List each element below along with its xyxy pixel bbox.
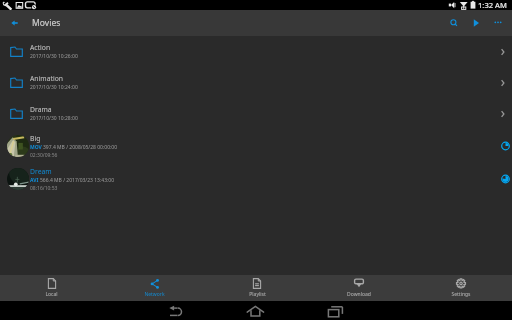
staticText: Settings [451, 291, 471, 298]
staticText: 397.4 MB / 2008/05/28 00:00:00 [43, 144, 118, 151]
button[interactable]: Big [0, 129, 512, 162]
staticText: 1:32 AM [478, 0, 507, 10]
button[interactable]: Animation [0, 67, 512, 98]
button[interactable]: Drama [0, 98, 512, 129]
staticText: MOV [30, 144, 42, 151]
staticText: 2017/10/30 10:28:00 [30, 115, 78, 122]
staticText: Local [45, 291, 58, 298]
staticText: 02:30/09:56 [30, 152, 58, 159]
button[interactable]: Action [0, 36, 512, 67]
staticText: Download [347, 291, 371, 298]
button[interactable]: Network [103, 275, 206, 301]
staticText: Dream [30, 167, 52, 176]
button[interactable]: Play [465, 10, 487, 36]
staticText: AVI [30, 177, 39, 184]
button[interactable]: Settings [410, 275, 512, 301]
staticText: Network [144, 291, 165, 298]
staticText: Movies [32, 17, 61, 29]
staticText: 2017/10/30 10:24:00 [30, 84, 78, 91]
staticText: Animation [30, 74, 63, 83]
button[interactable]: Local [0, 275, 103, 301]
button[interactable]: Playlist [206, 275, 308, 301]
staticText: 2017/10/30 10:26:00 [30, 53, 78, 60]
staticText: Action [30, 43, 51, 52]
button[interactable]: Navigate up [0, 10, 28, 36]
button[interactable]: Download [308, 275, 410, 301]
staticText: Big [30, 134, 41, 143]
button[interactable]: Search [443, 10, 465, 36]
staticText: Playlist [249, 291, 266, 298]
button[interactable]: Dream [0, 162, 512, 195]
staticText: 08:16/10:53 [30, 185, 58, 192]
staticText: 566.4 MB / 2017/03/23 13:43:00 [40, 177, 115, 184]
staticText: Drama [30, 105, 52, 114]
button[interactable]: More options [487, 10, 509, 36]
